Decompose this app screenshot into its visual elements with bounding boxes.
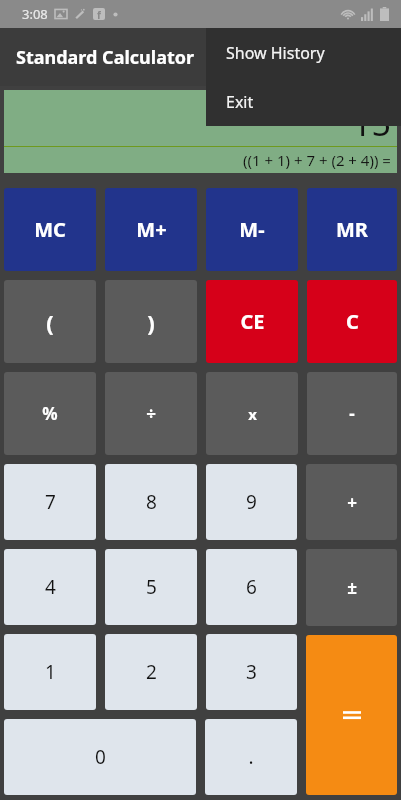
button[interactable]: (: [4, 280, 96, 363]
button[interactable]: Show History: [206, 28, 401, 77]
staticText: ÷: [146, 402, 156, 425]
staticText: 6: [246, 574, 257, 600]
staticText: M+: [136, 216, 167, 243]
button[interactable]: 6: [206, 549, 297, 625]
staticText: (: [46, 307, 54, 337]
staticText: +: [347, 491, 357, 514]
button[interactable]: .: [205, 719, 297, 795]
staticText: M-: [239, 216, 265, 243]
button[interactable]: ÷: [105, 372, 197, 455]
button[interactable]: +: [306, 464, 397, 540]
button[interactable]: 4: [4, 549, 96, 625]
button[interactable]: 7: [4, 464, 96, 540]
button[interactable]: Exit: [206, 77, 401, 126]
staticText: 4: [45, 574, 56, 600]
staticText: Exit: [226, 91, 254, 113]
button[interactable]: ): [105, 280, 197, 363]
staticText: MR: [336, 216, 368, 243]
staticText: 3:08: [22, 5, 48, 23]
staticText: ((1 + 1) + 7 + (2 + 4)) =: [243, 150, 391, 170]
staticText: 9: [246, 489, 257, 515]
staticText: ): [147, 307, 155, 337]
button[interactable]: 9: [206, 464, 297, 540]
button[interactable]: -: [307, 372, 397, 455]
staticText: 3: [246, 659, 257, 685]
staticText: 15: [352, 100, 391, 146]
staticText: 1: [45, 659, 56, 685]
staticText: -: [349, 402, 355, 425]
button[interactable]: 2: [105, 634, 197, 710]
staticText: MC: [34, 216, 66, 243]
button[interactable]: CE: [206, 280, 298, 363]
staticText: C: [346, 308, 359, 335]
staticText: 8: [146, 489, 157, 515]
staticText: 0: [95, 744, 106, 770]
staticText: f: [97, 8, 101, 20]
button[interactable]: 8: [105, 464, 197, 540]
button[interactable]: 0: [4, 719, 196, 795]
button[interactable]: C: [307, 280, 397, 363]
button[interactable]: M+: [105, 188, 197, 271]
button[interactable]: x: [206, 372, 298, 455]
staticText: 2: [146, 659, 157, 685]
staticText: Standard Calculator: [16, 45, 195, 70]
staticText: ±: [347, 576, 357, 599]
button[interactable]: M-: [206, 188, 298, 271]
button[interactable]: ±: [306, 549, 397, 626]
button[interactable]: MR: [307, 188, 397, 271]
button[interactable]: MC: [4, 188, 96, 271]
staticText: CE: [240, 308, 265, 335]
button[interactable]: 5: [105, 549, 197, 625]
staticText: %: [42, 402, 58, 425]
staticText: 5: [146, 574, 157, 600]
staticText: 7: [45, 489, 56, 515]
staticText: Show History: [226, 42, 325, 64]
staticText: x: [248, 404, 257, 424]
button[interactable]: 1: [4, 634, 96, 710]
button[interactable]: 3: [206, 634, 297, 710]
button[interactable]: Equals: [306, 635, 397, 795]
button[interactable]: %: [4, 372, 96, 455]
staticText: .: [248, 744, 254, 770]
